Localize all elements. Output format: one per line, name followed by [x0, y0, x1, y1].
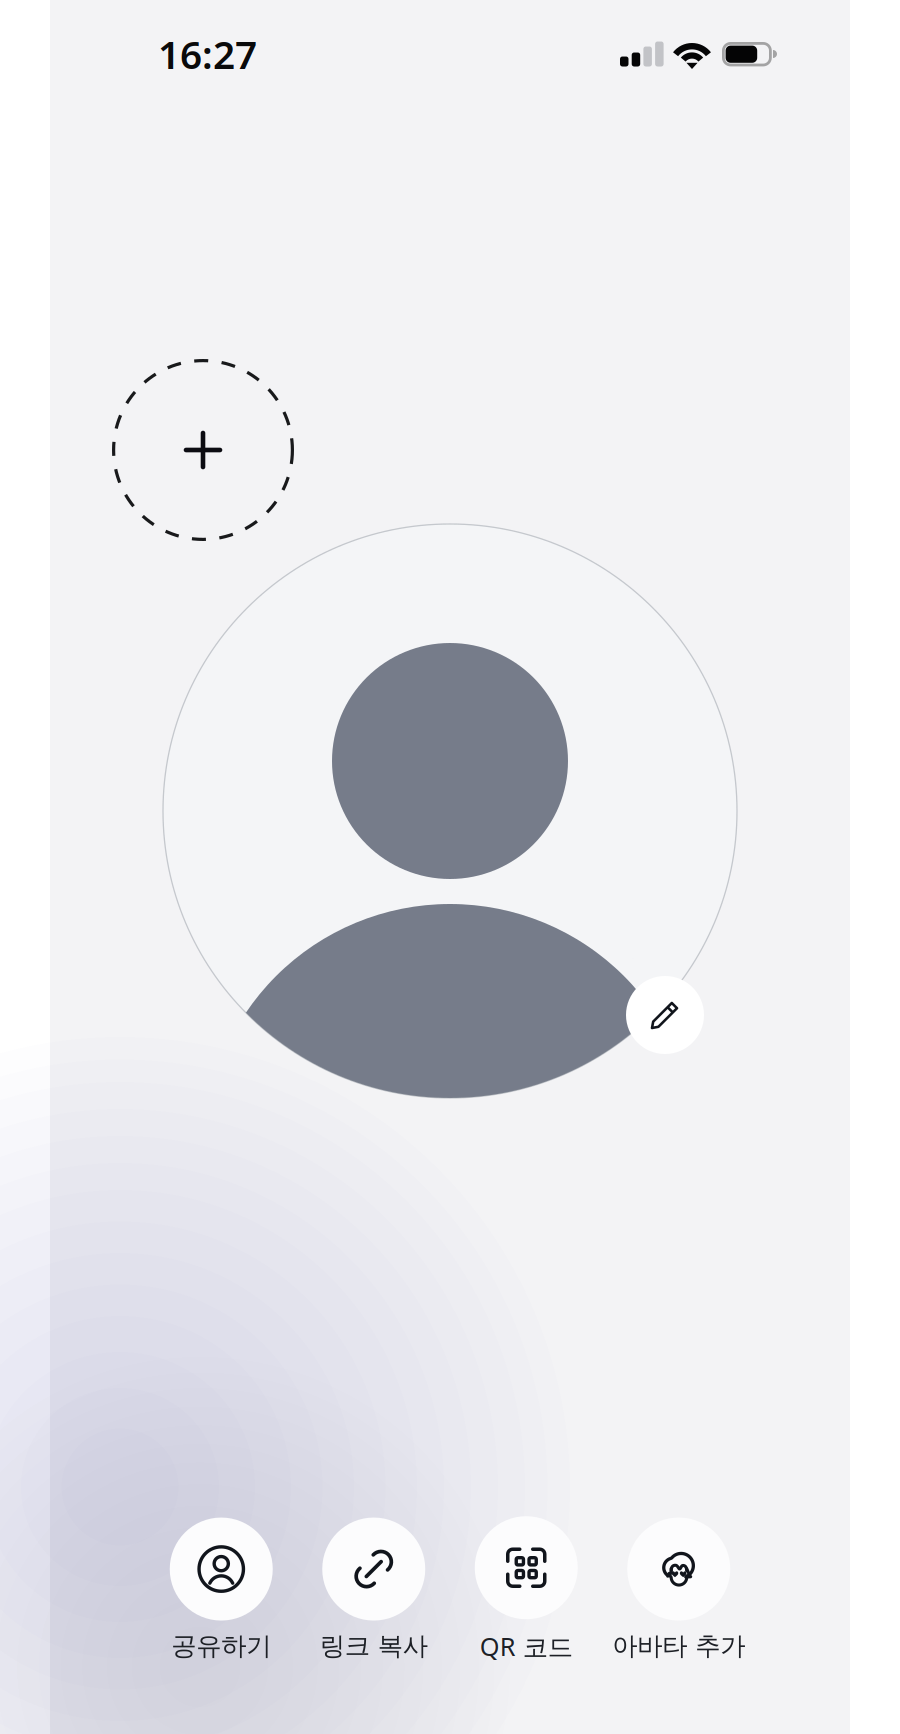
staticText: 링크 복사: [320, 1631, 428, 1662]
staticText: 공유하기: [171, 1631, 271, 1662]
staticText: QR 코드: [480, 1629, 573, 1663]
button[interactable]: 링크 복사: [297, 1518, 450, 1662]
button[interactable]: QR 코드: [450, 1516, 602, 1663]
button[interactable]: Edit avatar: [626, 976, 704, 1054]
button[interactable]: 공유하기: [145, 1518, 297, 1662]
button[interactable]: 아바타 추가: [602, 1518, 755, 1662]
staticText: 16:27: [158, 28, 257, 80]
button[interactable]: Add photo: [112, 359, 294, 541]
staticText: 아바타 추가: [612, 1631, 745, 1662]
